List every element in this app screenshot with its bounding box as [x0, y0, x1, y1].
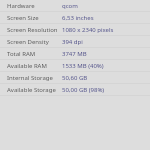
button[interactable]: Hardware	[0, 0, 150, 12]
staticText: Screen Resolution	[7, 26, 62, 34]
staticText: Hardware	[7, 2, 62, 10]
staticText: 3747 MB	[62, 50, 87, 58]
button[interactable]: Screen Size	[0, 12, 150, 24]
staticText: 1533 MB (40%)	[62, 62, 104, 70]
staticText: 1080 x 2340 pixels	[62, 26, 114, 34]
staticText: qcom	[62, 2, 78, 10]
staticText: 50,00 GB (98%)	[62, 86, 105, 94]
staticText: Screen Density	[7, 38, 62, 46]
staticText: Screen Size	[7, 14, 62, 22]
button[interactable]: Screen Density	[0, 36, 150, 48]
button[interactable]: Screen Resolution	[0, 24, 150, 36]
button[interactable]: Available Storage	[0, 84, 150, 96]
button[interactable]: Available RAM	[0, 60, 150, 72]
staticText: 6,53 inches	[62, 14, 94, 22]
staticText: Available Storage	[7, 86, 62, 94]
staticText: Internal Storage	[7, 74, 62, 82]
button[interactable]: Internal Storage	[0, 72, 150, 84]
staticText: Total RAM	[7, 50, 62, 58]
staticText: 394 dpi	[62, 38, 83, 46]
staticText: 50,60 GB	[62, 74, 88, 82]
staticText: Available RAM	[7, 62, 62, 70]
button[interactable]: Total RAM	[0, 48, 150, 60]
